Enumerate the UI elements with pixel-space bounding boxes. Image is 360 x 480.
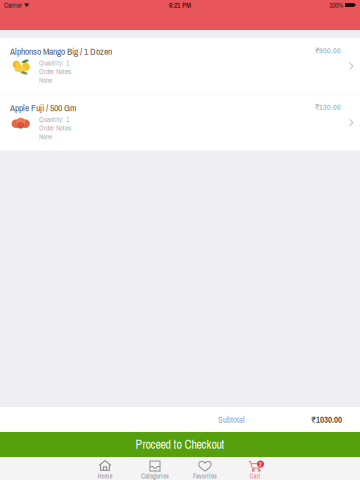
staticText: Home — [97, 471, 112, 480]
staticText: None — [39, 75, 52, 85]
staticText: 6:21 PM — [169, 0, 191, 10]
staticText: 100% — [329, 0, 343, 10]
staticText: Quantity: 1 — [39, 114, 69, 124]
staticText: ₹1030.00 — [311, 414, 342, 425]
button[interactable]: Proceed to Checkout — [0, 432, 360, 457]
staticText: Favorites — [193, 471, 217, 480]
button[interactable]: Alphonso Mango Big / 1 Dozen — [0, 38, 360, 94]
staticText: Proceed to Checkout — [135, 436, 224, 453]
button[interactable]: Favorites — [180, 457, 230, 480]
staticText: Order Notes: — [39, 66, 73, 76]
staticText: 2 — [259, 460, 262, 468]
staticText: Subtotal — [218, 414, 245, 425]
staticText: Apple Fuji / 500 Gm — [10, 101, 76, 114]
staticText: Quantity: 1 — [39, 58, 69, 68]
button[interactable]: 2 — [230, 457, 280, 480]
staticText: Alphonso Mango Big / 1 Dozen — [10, 45, 112, 58]
staticText: None — [39, 132, 52, 141]
staticText: Cart — [249, 471, 260, 480]
staticText: ₹900.00 — [315, 45, 341, 56]
staticText: ₹130.00 — [315, 101, 341, 112]
staticText: Carrier — [4, 0, 22, 10]
button[interactable]: Categories — [130, 457, 180, 480]
button[interactable]: Home — [80, 457, 130, 480]
staticText: Order Notes: — [39, 123, 73, 133]
button[interactable]: Apple Fuji / 500 Gm — [0, 94, 360, 150]
staticText: Categories — [141, 471, 169, 480]
